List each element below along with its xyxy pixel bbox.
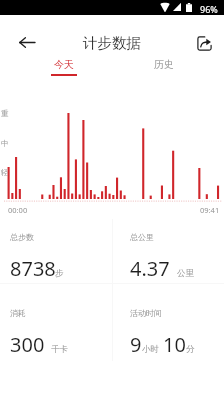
staticText: 步 (55, 268, 64, 279)
staticText: 96% (200, 3, 218, 15)
staticText: 中 (1, 139, 9, 148)
button[interactable]: 消耗 (10, 308, 45, 335)
button[interactable]: Share (189, 28, 219, 58)
staticText: 小时 (142, 344, 159, 355)
staticText: 分 (186, 344, 195, 355)
staticText: 09:41 (200, 205, 220, 215)
button[interactable]: Back (11, 26, 43, 58)
staticText: 轻 (1, 168, 9, 177)
staticText: 00:00 (8, 205, 28, 215)
staticText: 历史 (154, 58, 174, 71)
button[interactable]: 今天 (43, 58, 84, 76)
staticText: 重 (1, 109, 9, 118)
staticText: 千卡 (51, 344, 68, 355)
button[interactable]: 历史 (143, 58, 184, 71)
staticText: 总公里 (130, 232, 154, 242)
staticText: 8738 (10, 255, 56, 282)
staticText: 300 (10, 331, 45, 358)
button[interactable]: 总步数 (10, 232, 56, 259)
button[interactable]: 活动时间 (130, 308, 162, 335)
button[interactable]: 总公里 (130, 232, 170, 259)
staticText: 公里 (177, 268, 194, 279)
staticText: 活动时间 (130, 308, 162, 318)
staticText: 总步数 (10, 232, 34, 242)
staticText: 9 (130, 331, 142, 358)
staticText: 4.37 (130, 255, 170, 282)
staticText: 计步数据 (83, 34, 141, 52)
staticText: 今天 (54, 58, 74, 71)
staticText: 消耗 (10, 308, 26, 318)
staticText: 10 (163, 331, 186, 358)
